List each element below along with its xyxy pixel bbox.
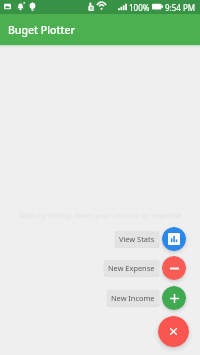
button[interactable]: New Expense [104,260,159,276]
staticText: 100% [129,2,150,13]
button[interactable]: Close actions menu [158,316,189,347]
staticText: New Expense [108,263,155,273]
button[interactable]: View Stats [162,227,186,251]
button[interactable]: New Income [107,290,159,306]
button[interactable]: View Stats [115,231,159,247]
button[interactable]: New Expense [162,256,186,280]
button[interactable]: New Income [162,286,186,310]
staticText: Start by noting down your income or expe… [0,210,200,220]
staticText: Buget Plotter [8,23,75,37]
staticText: View Stats [119,234,155,244]
staticText: New Income [111,293,155,303]
staticText: 9:54 PM [165,2,196,13]
